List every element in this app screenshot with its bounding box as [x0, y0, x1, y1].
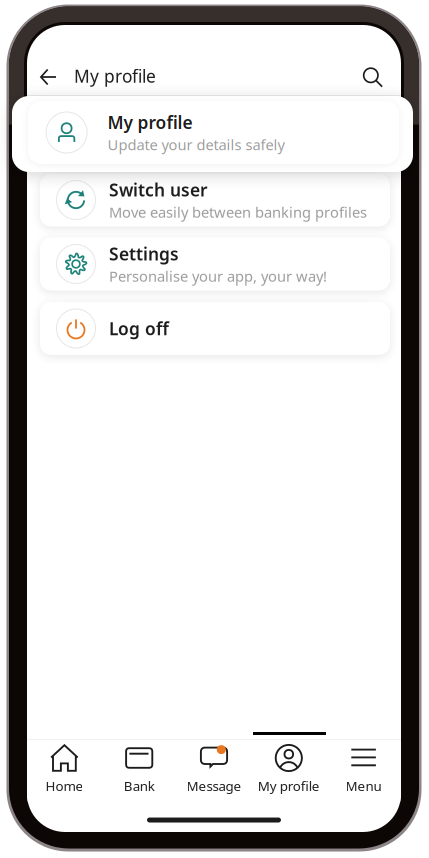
staticText: My profile: [108, 111, 193, 134]
staticText: Bank: [124, 777, 155, 795]
staticText: Settings: [109, 242, 179, 265]
button[interactable]: Bank: [102, 740, 177, 802]
staticText: Update your details safely: [108, 135, 285, 154]
staticText: Move easily between banking profiles: [109, 202, 367, 222]
staticText: Message: [186, 777, 241, 795]
button[interactable]: My profile: [251, 740, 326, 802]
staticText: My profile: [74, 64, 156, 87]
button[interactable]: Settings: [40, 237, 390, 290]
button[interactable]: Message: [177, 740, 251, 802]
staticText: Home: [45, 777, 83, 795]
button[interactable]: My profile: [28, 101, 399, 164]
staticText: Personalise your app, your way!: [109, 266, 327, 286]
staticText: Switch user: [109, 178, 208, 201]
button[interactable]: Search: [352, 57, 392, 97]
button[interactable]: Switch user: [40, 173, 390, 226]
staticText: My profile: [258, 777, 320, 795]
button[interactable]: Back: [28, 57, 68, 97]
button[interactable]: Home: [27, 740, 102, 802]
button[interactable]: Menu: [326, 740, 401, 802]
staticText: Log off: [109, 317, 169, 340]
button[interactable]: Log off: [40, 302, 390, 355]
staticText: Menu: [346, 777, 382, 795]
